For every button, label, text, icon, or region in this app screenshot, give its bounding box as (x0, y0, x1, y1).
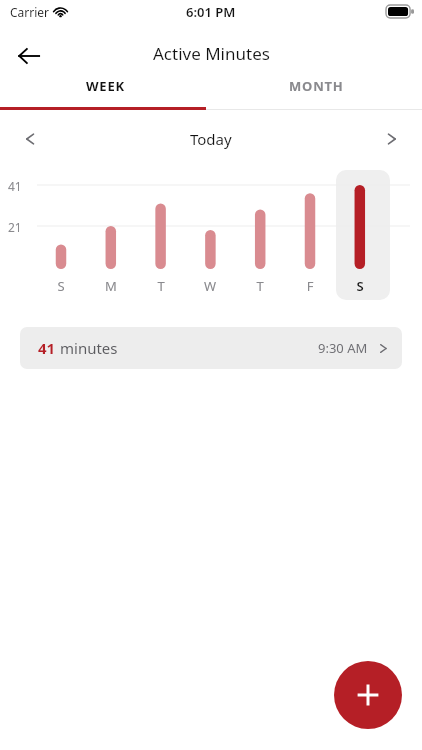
button[interactable]: MONTH (211, 66, 422, 106)
staticText: Carrier (10, 4, 50, 20)
button[interactable] (336, 170, 390, 300)
staticText: W (196, 277, 224, 295)
button[interactable]: Previous (12, 121, 48, 157)
staticText: F (296, 277, 324, 295)
button[interactable]: 41 (20, 327, 402, 369)
staticText: Today (190, 129, 232, 149)
staticText: S (47, 277, 75, 295)
staticText: MONTH (289, 77, 344, 95)
staticText: minutes (60, 338, 118, 358)
staticText: S (346, 277, 374, 295)
staticText: T (147, 277, 175, 295)
staticText: WEEK (86, 77, 125, 95)
button[interactable]: Add (334, 661, 402, 729)
staticText: T (246, 277, 274, 295)
staticText: Active Minutes (153, 42, 270, 65)
button[interactable]: Next (374, 121, 410, 157)
staticText: 41 (8, 178, 22, 194)
button[interactable]: Back (8, 35, 50, 77)
staticText: 41 (38, 338, 56, 358)
staticText: 9:30 AM (318, 339, 368, 357)
staticText: M (97, 277, 125, 295)
staticText: 6:01 PM (186, 3, 236, 21)
staticText: 21 (8, 219, 22, 235)
button[interactable]: WEEK (0, 66, 211, 106)
